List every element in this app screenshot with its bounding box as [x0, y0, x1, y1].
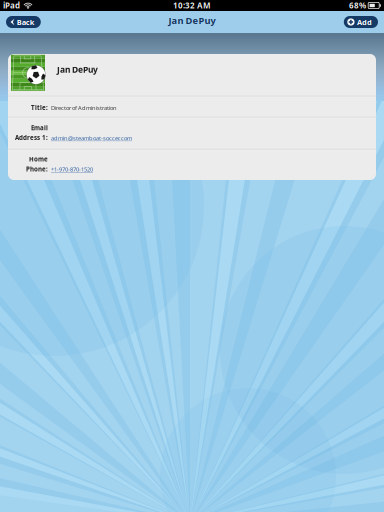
staticText: Title:	[31, 103, 48, 112]
button[interactable]: Back	[6, 16, 41, 28]
staticText: Add	[357, 17, 372, 27]
staticText: Address 1:	[15, 133, 48, 142]
staticText: Phone:	[26, 165, 48, 173]
staticText: Jan DePuy	[168, 14, 215, 27]
staticText: Back	[17, 17, 35, 27]
staticText: 68%	[349, 0, 366, 11]
staticText: admin@steamboat-soccer.com	[51, 134, 132, 142]
button[interactable]: Add	[344, 16, 378, 28]
staticText: Email	[31, 124, 48, 132]
button[interactable]: +1-970-870-1520	[48, 165, 93, 173]
staticText: Director of Administration	[51, 104, 117, 112]
staticText: +1-970-870-1520	[51, 165, 93, 173]
staticText: 10:32 AM	[173, 0, 211, 11]
staticText: Jan DePuy	[57, 64, 98, 75]
staticText: Home	[29, 155, 48, 163]
staticText: iPad	[3, 0, 20, 11]
button[interactable]: admin@steamboat-soccer.com	[48, 134, 132, 142]
